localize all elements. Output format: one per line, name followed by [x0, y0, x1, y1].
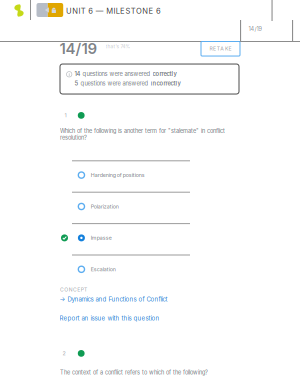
staticText: CONCEPT	[60, 286, 87, 293]
staticText: that's 74%	[105, 44, 130, 49]
button[interactable]: → Dynamics and Functions of Conflict	[59, 295, 167, 303]
staticText: Hardening of positions	[91, 172, 145, 178]
button[interactable]: Polarization	[60, 192, 240, 223]
staticText: 2	[62, 350, 65, 356]
staticText: Which of the following is another term f…	[60, 127, 225, 141]
staticText: 14/19	[248, 25, 261, 32]
button[interactable]: Escalation	[60, 254, 240, 286]
staticText: Impasse	[91, 235, 112, 241]
staticText: The context of a conflict refers to whic…	[60, 369, 208, 376]
button[interactable]: Hardening of positions	[60, 160, 240, 192]
button[interactable]: Impasse	[60, 223, 240, 254]
staticText: 14 questions were answered correctly	[74, 71, 176, 77]
staticText: → Dynamics and Functions of Conflict	[59, 295, 167, 303]
staticText: 5 questions were answered incorrectly	[74, 80, 180, 87]
button[interactable]: RETAKE	[201, 41, 240, 56]
staticText: Escalation	[91, 266, 116, 272]
button[interactable]: Report an issue with this question	[59, 314, 159, 322]
staticText: Report an issue with this question	[59, 314, 159, 322]
staticText: Polarization	[91, 203, 119, 210]
staticText: UNIT 6 — MILESTONE 6	[66, 6, 161, 16]
staticText: RETAKE	[209, 46, 232, 52]
staticText: 14/19	[59, 39, 97, 58]
staticText: 1	[64, 112, 66, 118]
